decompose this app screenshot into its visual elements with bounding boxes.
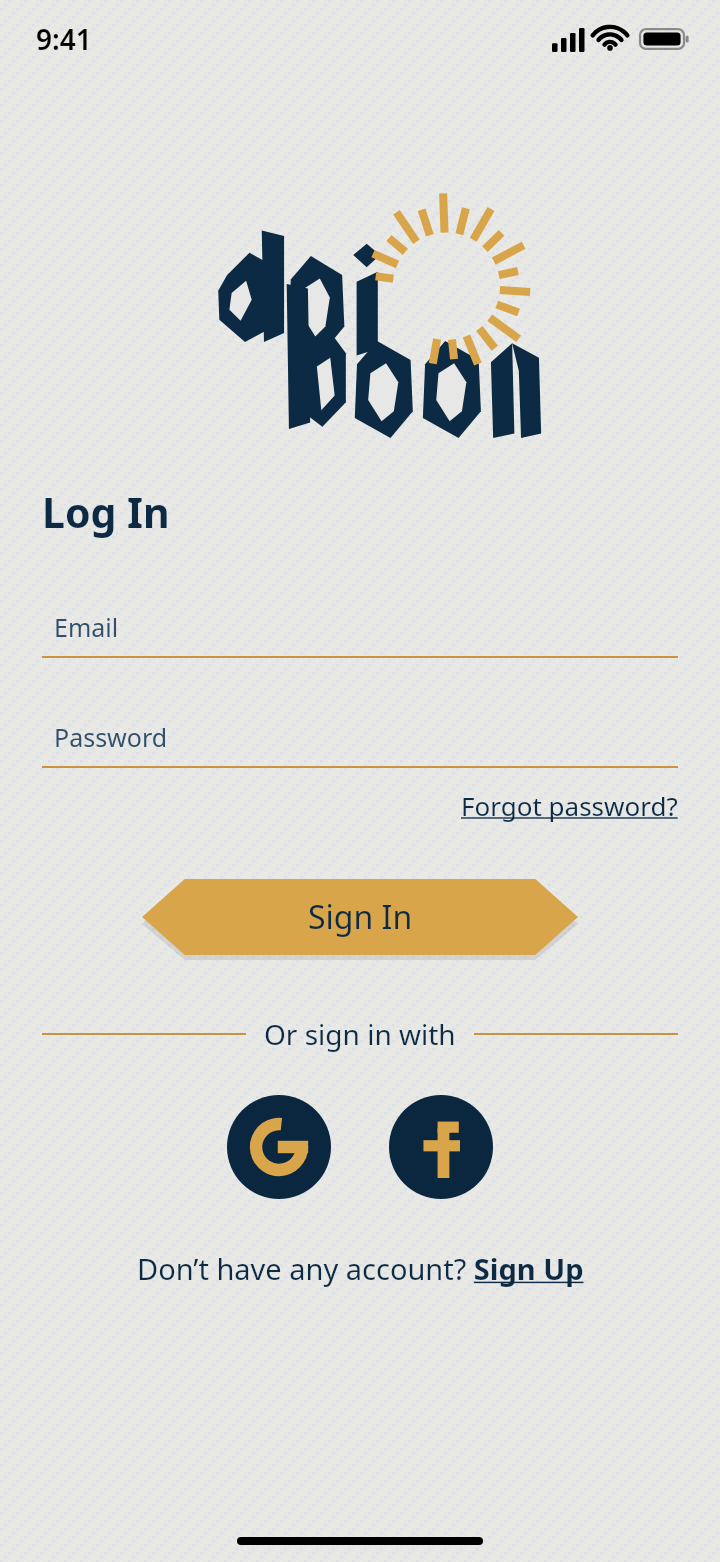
button[interactable]: Log In bbox=[42, 484, 170, 540]
staticText: Password bbox=[54, 720, 168, 754]
button[interactable]: Sign in with Google bbox=[227, 1095, 331, 1199]
button[interactable]: Sign in with Facebook bbox=[389, 1095, 493, 1199]
button[interactable]: Email bbox=[42, 610, 678, 658]
button[interactable]: Forgot password? bbox=[461, 788, 678, 823]
staticText: Or sign in with bbox=[264, 1015, 456, 1053]
staticText: 9:41 bbox=[36, 20, 92, 58]
button[interactable]: Password bbox=[42, 720, 678, 768]
button[interactable]: Don’t have any account? Sign Up bbox=[137, 1249, 584, 1288]
button[interactable]: Sign In bbox=[142, 879, 578, 955]
staticText: Sign In bbox=[308, 895, 413, 939]
staticText: Email bbox=[54, 610, 119, 644]
